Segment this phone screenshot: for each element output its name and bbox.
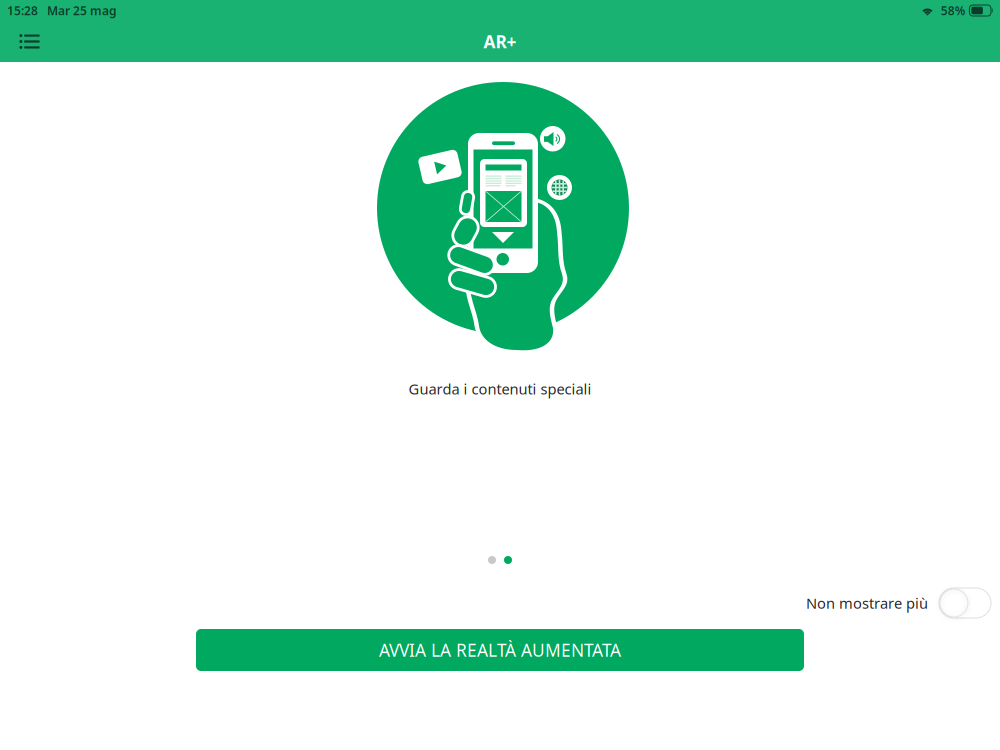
- staticText: 15:28: [7, 2, 38, 18]
- staticText: Guarda i contenuti speciali: [408, 379, 591, 398]
- button[interactable]: Non mostrare più: [806, 588, 991, 618]
- staticText: Mar 25 mag: [47, 2, 117, 18]
- button[interactable]: Page 2: [504, 556, 512, 564]
- staticText: AVVIA LA REALTÀ AUMENTATA: [379, 638, 621, 661]
- button[interactable]: Menu: [0, 21, 54, 62]
- staticText: Non mostrare più: [806, 593, 928, 613]
- staticText: AR+: [483, 30, 516, 53]
- staticText: 58%: [941, 2, 966, 18]
- button[interactable]: AVVIA LA REALTÀ AUMENTATA: [196, 629, 804, 671]
- button[interactable]: Page 1: [488, 556, 496, 564]
